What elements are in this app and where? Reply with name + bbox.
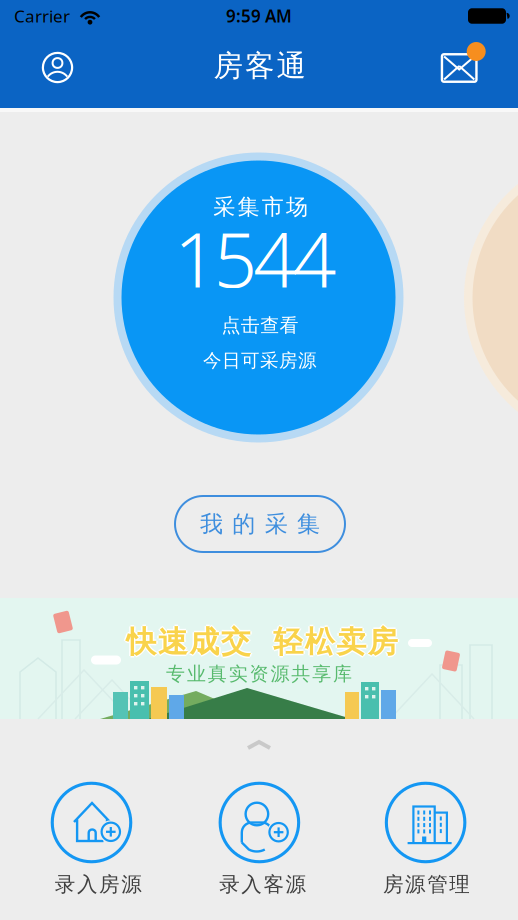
button[interactable]: 录入房源 (31, 780, 151, 905)
button[interactable]: 收起 (247, 741, 271, 750)
button[interactable]: 采集市场 (112, 151, 404, 443)
button[interactable]: 推广 (0, 598, 518, 719)
staticText: 快速成交 轻松卖房 (126, 625, 398, 662)
button[interactable]: 录入客源 (199, 780, 319, 905)
staticText: 录入客源 (219, 872, 307, 897)
staticText: 我的采集 (200, 509, 320, 538)
button[interactable]: 消息 (442, 42, 486, 82)
staticText: 快速成交 轻松卖房 (126, 622, 398, 659)
button[interactable]: 我的采集 (175, 496, 345, 552)
staticText: 房源管理 (383, 872, 470, 897)
button[interactable]: 房源管理 (366, 780, 486, 905)
staticText: 1544 (174, 206, 336, 310)
staticText: 9:59 AM (226, 4, 292, 28)
staticText: 录入房源 (55, 872, 142, 897)
staticText: 房客通 (213, 47, 306, 85)
staticText: 采集市场 (213, 193, 308, 221)
staticText: 专业真实资源共享库 (166, 662, 352, 686)
staticText: 快速成交 轻松卖房 (128, 623, 399, 661)
button[interactable]: 我的 (41, 51, 73, 83)
staticText: Carrier (14, 4, 70, 28)
staticText: 点击查看 (221, 313, 298, 337)
staticText: 快速成交 轻松卖房 (126, 623, 398, 661)
staticText: 今日可采房源 (203, 349, 317, 372)
staticText: 快速成交 轻松卖房 (125, 623, 396, 661)
